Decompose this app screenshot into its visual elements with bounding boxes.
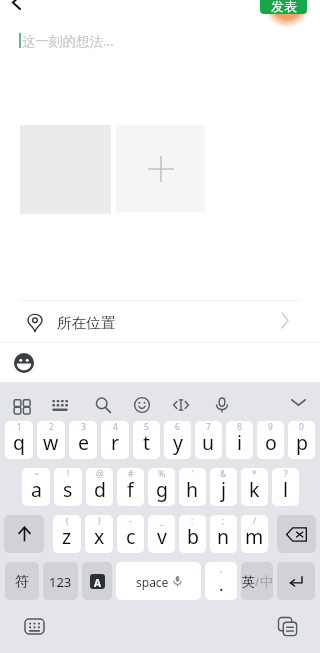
- button[interactable]: 0: [288, 421, 315, 459]
- button[interactable]: !: [54, 468, 82, 506]
- button[interactable]: 9: [257, 421, 284, 459]
- staticText: .: [219, 573, 224, 596]
- button[interactable]: Emoji: [8, 347, 39, 378]
- staticText: :: [191, 515, 194, 527]
- staticText: ,: [220, 563, 223, 574]
- button[interactable]: -: [117, 515, 144, 553]
- button[interactable]: 1: [5, 421, 33, 459]
- button[interactable]: Text cursor: [162, 382, 200, 421]
- staticText: space: [136, 574, 169, 590]
- button[interactable]: Input language: [82, 562, 112, 600]
- staticText: 8: [237, 421, 242, 433]
- button[interactable]: 符: [5, 562, 39, 600]
- staticText: ): [98, 515, 101, 527]
- button[interactable]: Search: [84, 382, 122, 421]
- button[interactable]: 6: [164, 421, 191, 459]
- button[interactable]: Backspace: [277, 515, 316, 553]
- button[interactable]: 英: [241, 562, 273, 600]
- button[interactable]: Add photo: [116, 125, 205, 212]
- staticText: m: [245, 523, 264, 550]
- staticText: w: [43, 429, 59, 456]
- staticText: d: [94, 476, 106, 503]
- staticText: h: [186, 476, 199, 503]
- button[interactable]: (: [53, 515, 81, 553]
- staticText: 4: [113, 421, 118, 433]
- staticText: r: [111, 429, 120, 456]
- staticText: z: [62, 523, 72, 550]
- button[interactable]: @: [86, 468, 113, 506]
- button[interactable]: 发表: [260, 0, 307, 14]
- staticText: 英: [242, 573, 255, 589]
- staticText: p: [296, 429, 308, 456]
- staticText: a: [31, 476, 42, 503]
- button[interactable]: ): [85, 515, 113, 553]
- staticText: ;: [222, 515, 225, 527]
- staticText: e: [78, 429, 89, 456]
- staticText: 这一刻的想法…: [22, 32, 114, 50]
- button[interactable]: :: [179, 515, 206, 553]
- button[interactable]: /: [241, 515, 268, 553]
- staticText: %: [158, 468, 166, 480]
- staticText: @: [96, 468, 104, 480]
- staticText: 7: [206, 421, 211, 433]
- button[interactable]: &: [210, 468, 237, 506]
- button[interactable]: ,: [205, 562, 237, 600]
- button[interactable]: 4: [101, 421, 129, 459]
- staticText: s: [63, 476, 73, 503]
- button[interactable]: _: [148, 515, 175, 553]
- button[interactable]: Hide keyboard: [278, 382, 318, 421]
- staticText: 2: [49, 421, 54, 433]
- button[interactable]: ?: [272, 468, 299, 506]
- staticText: b: [187, 523, 199, 550]
- button[interactable]: Switch keyboard: [18, 610, 50, 642]
- button[interactable]: 所在位置: [0, 301, 320, 342]
- staticText: v: [157, 523, 167, 550]
- staticText: g: [156, 476, 168, 503]
- button[interactable]: Apps: [2, 382, 40, 421]
- staticText: &: [220, 468, 227, 480]
- staticText: /: [253, 515, 257, 527]
- button[interactable]: %: [148, 468, 175, 506]
- staticText: q: [13, 429, 25, 456]
- button[interactable]: 5: [133, 421, 160, 459]
- button[interactable]: ': [179, 468, 206, 506]
- staticText: 9: [268, 421, 273, 433]
- button[interactable]: 123: [43, 562, 78, 600]
- staticText: A: [94, 576, 101, 589]
- staticText: 中: [260, 573, 273, 589]
- button[interactable]: Clipboard: [271, 610, 303, 642]
- button[interactable]: *: [241, 468, 268, 506]
- button[interactable]: Stickers: [123, 382, 161, 421]
- staticText: ~: [34, 468, 39, 480]
- button[interactable]: Back: [1, 0, 31, 18]
- staticText: /: [255, 574, 260, 589]
- button[interactable]: Enter: [277, 562, 315, 600]
- button[interactable]: 3: [69, 421, 97, 459]
- button[interactable]: 7: [195, 421, 222, 459]
- staticText: l: [283, 476, 289, 503]
- staticText: 发表: [271, 0, 297, 14]
- staticText: (: [66, 515, 69, 527]
- button[interactable]: Voice input: [203, 382, 241, 421]
- staticText: k: [249, 476, 260, 503]
- staticText: _: [160, 515, 164, 527]
- button[interactable]: ~: [22, 468, 50, 506]
- staticText: f: [127, 476, 134, 503]
- staticText: 符: [15, 573, 29, 591]
- staticText: 0: [299, 421, 304, 433]
- button[interactable]: 2: [37, 421, 65, 459]
- staticText: 123: [49, 573, 72, 591]
- button[interactable]: Keyboard layout: [41, 382, 79, 421]
- staticText: -: [129, 515, 132, 527]
- staticText: u: [202, 429, 215, 456]
- button[interactable]: ;: [210, 515, 237, 553]
- staticText: c: [126, 523, 136, 550]
- button[interactable]: Shift: [4, 515, 44, 553]
- staticText: #: [128, 468, 134, 480]
- button[interactable]: #: [117, 468, 144, 506]
- button[interactable]: 8: [226, 421, 253, 459]
- staticText: n: [217, 523, 230, 550]
- button[interactable]: space: [116, 562, 201, 600]
- staticText: 所在位置: [57, 314, 116, 332]
